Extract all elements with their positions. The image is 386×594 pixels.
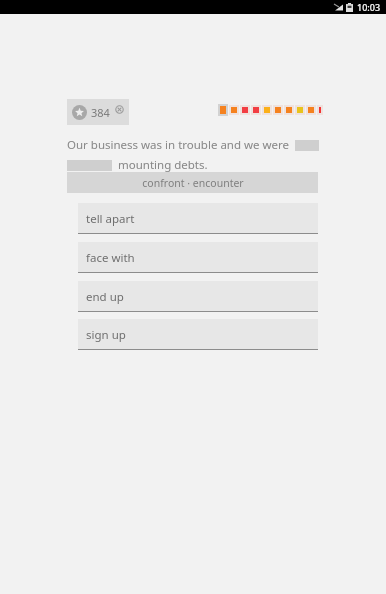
button[interactable]: confront · encounter (67, 172, 318, 193)
button[interactable]: sign up (78, 319, 318, 350)
button[interactable]: 384 (67, 99, 129, 125)
staticText: 10:03 (357, 1, 381, 13)
staticText: confront · encounter (142, 176, 244, 190)
staticText: Our business was in trouble and we were (67, 137, 290, 153)
button[interactable]: end up (78, 281, 318, 312)
other: Close (115, 105, 124, 119)
staticText: face with (86, 250, 135, 266)
staticText: tell apart (86, 211, 135, 227)
button[interactable]: tell apart (78, 203, 318, 234)
staticText: 384 (91, 105, 110, 120)
button[interactable]: face with (78, 242, 318, 273)
staticText: end up (86, 289, 124, 305)
staticText: sign up (86, 327, 126, 343)
staticText: mounting debts. (118, 157, 208, 173)
